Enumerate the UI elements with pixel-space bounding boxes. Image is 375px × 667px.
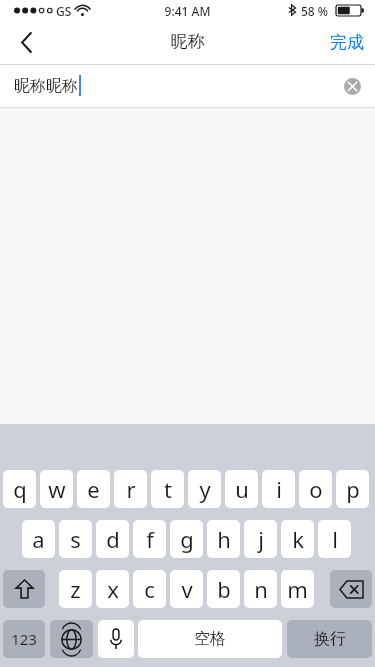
staticText: i: [276, 474, 282, 504]
button[interactable]: l: [318, 520, 351, 558]
button[interactable]: s: [59, 520, 92, 558]
staticText: k: [292, 524, 304, 554]
button[interactable]: Dictate: [98, 620, 134, 658]
button[interactable]: r: [114, 470, 147, 508]
staticText: 换行: [314, 629, 346, 649]
button[interactable]: e: [77, 470, 110, 508]
staticText: d: [106, 524, 120, 554]
staticText: v: [181, 574, 193, 604]
staticText: q: [13, 474, 27, 504]
button[interactable]: Clear text: [344, 78, 361, 95]
staticText: f: [146, 524, 154, 554]
staticText: z: [70, 574, 81, 604]
staticText: 123: [11, 629, 37, 649]
staticText: 空格: [194, 629, 226, 649]
button[interactable]: j: [244, 520, 277, 558]
staticText: 完成: [330, 32, 364, 53]
button[interactable]: w: [40, 470, 73, 508]
button[interactable]: m: [281, 570, 314, 608]
button[interactable]: 完成: [319, 20, 375, 64]
button[interactable]: i: [262, 470, 295, 508]
button[interactable]: a: [22, 520, 55, 558]
staticText: j: [258, 524, 264, 554]
button[interactable]: g: [170, 520, 203, 558]
button[interactable]: q: [3, 470, 36, 508]
button[interactable]: u: [225, 470, 258, 508]
button[interactable]: 123: [3, 620, 45, 658]
staticText: y: [199, 474, 211, 504]
button[interactable]: 昵称昵称: [0, 65, 375, 107]
button[interactable]: d: [96, 520, 129, 558]
button[interactable]: o: [299, 470, 332, 508]
staticText: a: [32, 524, 45, 554]
staticText: h: [217, 524, 231, 554]
staticText: g: [180, 524, 194, 554]
button[interactable]: x: [96, 570, 129, 608]
staticText: m: [287, 574, 308, 604]
button[interactable]: t: [151, 470, 184, 508]
button[interactable]: c: [133, 570, 166, 608]
staticText: r: [126, 474, 136, 504]
button[interactable]: y: [188, 470, 221, 508]
button[interactable]: n: [244, 570, 277, 608]
button[interactable]: 换行: [287, 620, 372, 658]
staticText: 9:41 AM: [0, 3, 375, 19]
staticText: n: [254, 574, 268, 604]
button[interactable]: k: [281, 520, 314, 558]
button[interactable]: f: [133, 520, 166, 558]
staticText: GS: [56, 3, 72, 19]
button[interactable]: 空格: [138, 620, 282, 658]
staticText: 昵称: [0, 31, 375, 52]
staticText: p: [346, 474, 360, 504]
button[interactable]: h: [207, 520, 240, 558]
button[interactable]: v: [170, 570, 203, 608]
button[interactable]: b: [207, 570, 240, 608]
staticText: w: [48, 474, 66, 504]
staticText: l: [332, 524, 338, 554]
staticText: 昵称昵称: [14, 76, 78, 96]
staticText: c: [144, 574, 155, 604]
button[interactable]: p: [336, 470, 369, 508]
button[interactable]: Backspace: [330, 570, 372, 608]
button[interactable]: z: [59, 570, 92, 608]
button[interactable]: Back: [0, 20, 52, 64]
staticText: s: [70, 524, 81, 554]
staticText: e: [87, 474, 100, 504]
staticText: o: [309, 474, 323, 504]
staticText: u: [235, 474, 249, 504]
staticText: b: [217, 574, 231, 604]
button[interactable]: Shift: [3, 570, 45, 608]
staticText: t: [164, 474, 172, 504]
staticText: 58 %: [301, 3, 329, 19]
button[interactable]: Switch keyboard: [50, 620, 93, 658]
staticText: x: [107, 574, 119, 604]
